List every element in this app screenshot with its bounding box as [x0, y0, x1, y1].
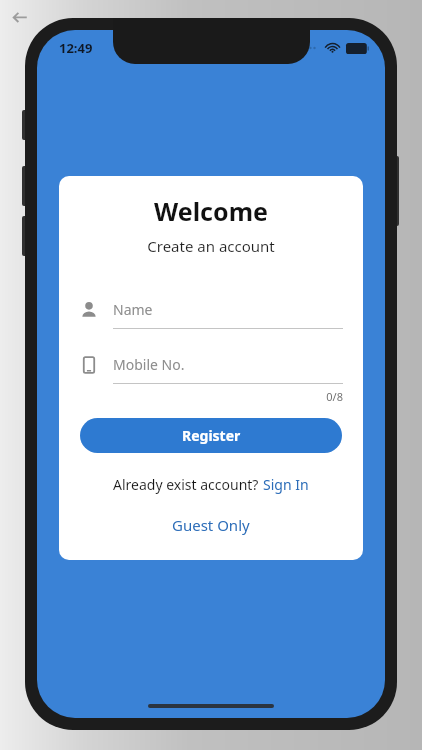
button[interactable]: Register — [80, 418, 342, 453]
button[interactable]: Back — [5, 2, 33, 30]
staticText: Name — [113, 300, 153, 319]
staticText: Register — [182, 426, 241, 445]
button[interactable]: Name — [79, 300, 343, 329]
staticText: Guest Only — [172, 515, 250, 535]
button[interactable]: Guest Only — [164, 512, 258, 538]
staticText: Create an account — [59, 236, 363, 256]
button[interactable]: Sign In — [263, 475, 309, 494]
staticText: 0/8 — [59, 389, 343, 404]
staticText: Mobile No. — [113, 355, 185, 374]
staticText: Sign In — [263, 475, 309, 494]
staticText: Welcome — [59, 194, 363, 228]
staticText: Already exist account? — [113, 475, 263, 494]
button[interactable]: Mobile No. — [79, 355, 343, 384]
staticText: 12:49 — [59, 39, 93, 57]
